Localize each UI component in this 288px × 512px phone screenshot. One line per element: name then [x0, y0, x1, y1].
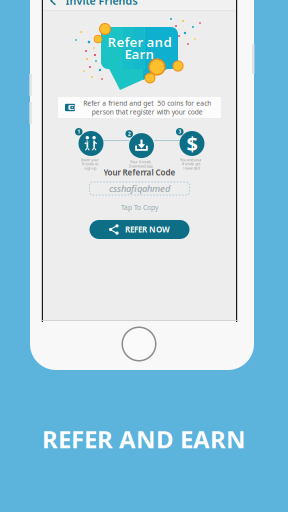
button[interactable]: csshafiqahmed	[89, 182, 189, 195]
staticText: Refer and	[107, 33, 171, 51]
staticText: Invite your	[81, 157, 99, 162]
staticText: csshafiqahmed	[109, 182, 170, 195]
staticText: sign up	[84, 165, 96, 171]
staticText: Download app	[128, 163, 152, 168]
staticText: Your Referral Code	[103, 167, 175, 178]
staticText: 3	[178, 128, 181, 135]
staticText: You and your	[180, 157, 202, 162]
staticText: friends to	[82, 161, 98, 166]
staticText: 1	[77, 128, 80, 135]
button[interactable]: Back	[46, 0, 60, 6]
staticText: REFER AND EARN	[42, 423, 246, 455]
staticText: rewarded	[182, 165, 199, 171]
staticText: $	[186, 130, 197, 157]
staticText: Invite Friends	[65, 0, 137, 8]
staticText: Tap To Copy	[121, 203, 158, 212]
staticText: REFER NOW	[125, 224, 170, 235]
staticText: Earn	[124, 45, 154, 63]
staticText: Your friends	[130, 159, 151, 164]
staticText: 2	[128, 130, 131, 137]
staticText: friends get	[182, 161, 200, 166]
staticText: Refer a friend and get 50 coins for each…	[83, 99, 211, 116]
button[interactable]: REFER NOW	[89, 220, 189, 239]
button[interactable]: Tap To Copy	[43, 203, 236, 212]
